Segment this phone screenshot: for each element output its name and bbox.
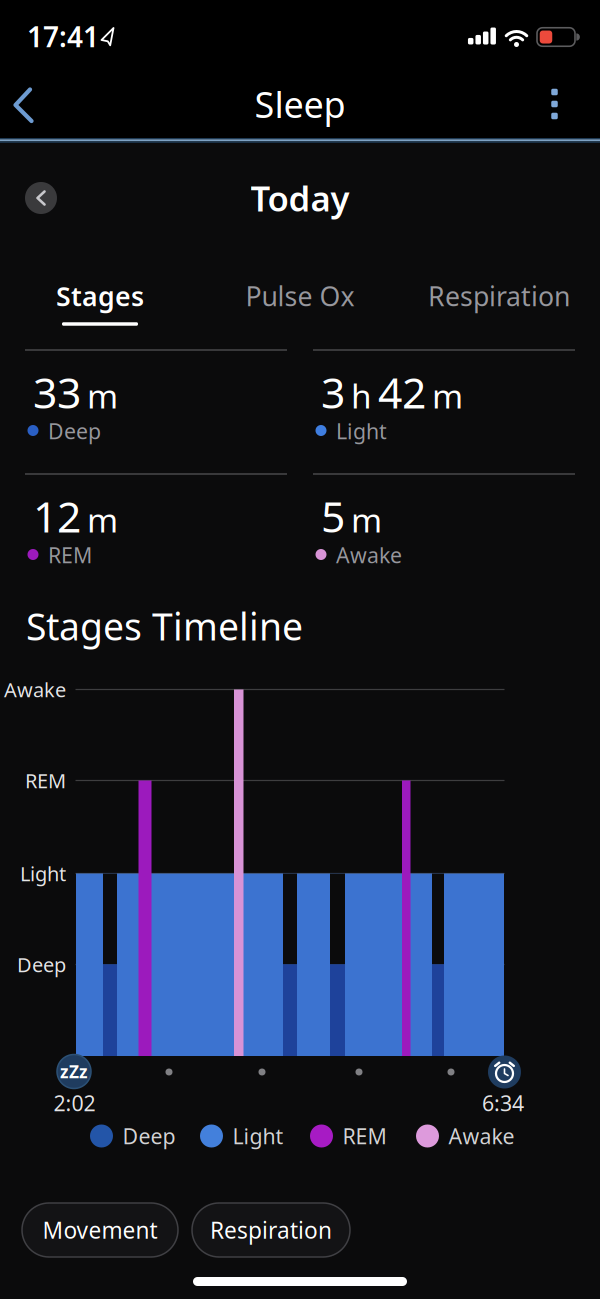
button[interactable]: Respiration xyxy=(419,266,579,326)
staticText: Deep xyxy=(122,1122,175,1150)
staticText: h xyxy=(351,373,372,418)
button[interactable] xyxy=(2,83,46,127)
staticText: Stages Timeline xyxy=(26,601,303,651)
button[interactable] xyxy=(532,82,576,126)
staticText: 2:02 xyxy=(53,1089,95,1117)
staticText: zZz xyxy=(60,1060,88,1083)
staticText: Awake xyxy=(448,1122,514,1150)
staticText: m xyxy=(351,497,382,542)
staticText: 33 xyxy=(33,364,81,420)
staticText: 5 xyxy=(321,488,345,544)
staticText: 12 xyxy=(33,488,81,544)
staticText: 42 xyxy=(378,364,426,420)
staticText: m xyxy=(432,373,463,418)
staticText: Stages xyxy=(56,278,144,314)
staticText: REM xyxy=(342,1122,386,1150)
staticText: Awake xyxy=(4,676,66,703)
staticText: Awake xyxy=(336,541,402,569)
staticText: Deep xyxy=(17,951,66,978)
button[interactable]: Pulse Ox xyxy=(225,266,375,326)
staticText: REM xyxy=(48,541,92,569)
staticText: Respiration xyxy=(428,278,570,314)
staticText: Pulse Ox xyxy=(245,278,354,314)
staticText: Light xyxy=(232,1122,283,1150)
staticText: Light xyxy=(336,417,387,445)
staticText: Respiration xyxy=(210,1215,332,1245)
staticText: Movement xyxy=(42,1215,157,1245)
staticText: 17:41 xyxy=(27,18,99,55)
staticText: Sleep xyxy=(254,80,345,128)
button[interactable]: Movement xyxy=(22,1203,178,1257)
staticText: 6:34 xyxy=(482,1089,524,1117)
button[interactable]: Stages xyxy=(35,266,165,326)
staticText: Today xyxy=(250,175,349,221)
button[interactable] xyxy=(25,182,57,214)
button[interactable]: Respiration xyxy=(192,1203,350,1257)
staticText: m xyxy=(87,373,118,418)
staticText: Deep xyxy=(48,417,101,445)
staticText: m xyxy=(87,497,118,542)
staticText: 3 xyxy=(321,364,345,420)
staticText: Light xyxy=(20,860,66,887)
staticText: REM xyxy=(25,767,66,794)
